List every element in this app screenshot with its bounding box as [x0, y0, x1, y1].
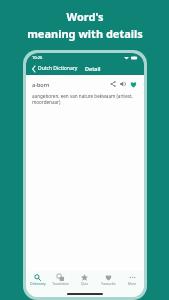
staticText: meaning with details: [27, 26, 143, 41]
button[interactable]: Pronounce: [118, 79, 128, 89]
staticText: aangeboren, een van nature bekwaam (arti…: [32, 93, 133, 105]
staticText: Word's: [66, 9, 104, 24]
button[interactable]: More: [120, 271, 144, 290]
button[interactable]: Favourite: [96, 271, 120, 290]
staticText: Translation: [52, 282, 69, 286]
staticText: Dutch Dictionary: [38, 65, 78, 72]
staticText: More: [128, 282, 136, 286]
button[interactable]: Back to Dutch Dictionary: [31, 63, 79, 74]
button[interactable]: Detail: [85, 65, 101, 72]
staticText: Dictionary: [30, 282, 46, 286]
staticText: Quiz: [81, 282, 88, 286]
staticText: Favourite: [101, 282, 116, 286]
button[interactable]: Share: [108, 79, 118, 89]
staticText: 10:26: [32, 55, 43, 60]
button[interactable]: Translation: [49, 271, 72, 290]
button[interactable]: Favorite: [128, 79, 138, 89]
button[interactable]: Dictionary: [26, 271, 49, 290]
button[interactable]: Quiz: [72, 271, 96, 290]
staticText: a-born: [32, 81, 50, 88]
